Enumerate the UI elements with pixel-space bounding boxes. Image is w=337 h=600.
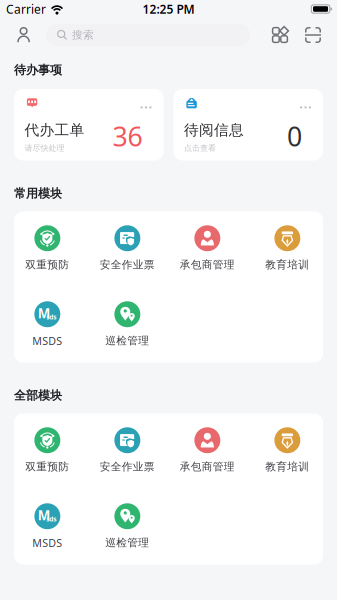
staticText: sds xyxy=(46,312,56,321)
staticText: 承包商管理 xyxy=(180,460,235,473)
button[interactable]: 承包商管理 xyxy=(167,427,247,472)
button[interactable]: 教育培训 xyxy=(247,225,327,270)
button[interactable]: 教育培训 xyxy=(247,427,327,472)
staticText: MSDS xyxy=(32,334,62,348)
button[interactable]: 双重预防 xyxy=(7,225,87,270)
staticText: MSDS xyxy=(32,536,62,550)
button[interactable]: 双重预防 xyxy=(7,427,87,472)
staticText: 安全作业票 xyxy=(100,460,155,473)
button[interactable]: M xyxy=(7,503,87,548)
button[interactable]: 巡检管理 xyxy=(87,503,167,548)
staticText: 代办工单 xyxy=(24,121,84,139)
staticText: 教育培训 xyxy=(265,460,309,473)
staticText: 请尽快处理 xyxy=(24,143,64,153)
staticText: 全部模块 xyxy=(14,388,62,403)
staticText: 待阅信息 xyxy=(184,121,244,139)
button[interactable]: 巡检管理 xyxy=(87,301,167,346)
button[interactable]: 安全作业票 xyxy=(87,225,167,270)
button[interactable]: M xyxy=(7,301,87,346)
staticText: 巡检管理 xyxy=(105,334,149,347)
button[interactable]: All apps xyxy=(262,21,296,49)
staticText: M xyxy=(38,506,51,524)
staticText: 12:25 PM xyxy=(142,1,194,17)
button[interactable]: 搜索 xyxy=(46,24,250,46)
staticText: 搜索 xyxy=(72,28,94,41)
staticText: 双重预防 xyxy=(25,460,69,473)
staticText: 教育培训 xyxy=(265,258,309,271)
staticText: 常用模块 xyxy=(14,186,62,201)
staticText: 36 xyxy=(112,118,142,154)
button[interactable]: 承包商管理 xyxy=(167,225,247,270)
staticText: 0 xyxy=(287,118,302,154)
button[interactable]: 待阅信息 xyxy=(173,89,323,160)
staticText: 安全作业票 xyxy=(100,258,155,271)
button[interactable]: 安全作业票 xyxy=(87,427,167,472)
staticText: 承包商管理 xyxy=(180,258,235,271)
staticText: 点击查看 xyxy=(184,143,216,153)
staticText: 双重预防 xyxy=(25,258,69,271)
staticText: 巡检管理 xyxy=(105,536,149,549)
staticText: 待办事项 xyxy=(14,63,62,77)
staticText: sds xyxy=(46,514,56,523)
staticText: M xyxy=(38,304,51,322)
staticText: Carrier xyxy=(6,1,46,17)
button[interactable]: 代办工单 xyxy=(14,89,163,160)
button[interactable]: Scan xyxy=(297,21,329,49)
button[interactable]: Profile xyxy=(0,21,46,49)
